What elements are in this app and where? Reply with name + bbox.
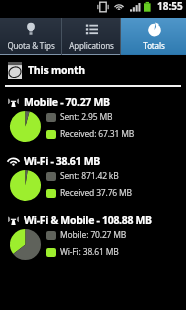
button[interactable]: Quota & Tips [0, 18, 62, 55]
staticText: Quota & Tips [7, 40, 55, 51]
staticText: Wi-Fi: 38.61 MB [60, 246, 119, 258]
staticText: Received: 67.31 MB [60, 128, 135, 140]
staticText: Totals [143, 40, 165, 51]
button[interactable]: Applications [62, 18, 121, 55]
staticText: Wi-Fi - 38.61 MB [24, 154, 100, 168]
staticText: 18:55 [157, 0, 183, 13]
staticText: Sent: 871.42 kB [60, 170, 119, 182]
staticText: Applications [69, 40, 114, 51]
staticText: Mobile: 70.27 MB [60, 229, 127, 241]
other: Mobile data [8, 97, 19, 107]
other: Mobile data [8, 215, 19, 225]
other: Wi-Fi [8, 156, 19, 166]
button[interactable]: Wi-Fi [0, 146, 186, 205]
button[interactable]: Mobile data [0, 205, 186, 264]
staticText: Wi-Fi & Mobile - 108.88 MB [24, 213, 152, 227]
staticText: Mobile - 70.27 MB [24, 95, 110, 109]
button[interactable]: Mobile data [0, 87, 186, 146]
staticText: Sent: 2.95 MB [60, 111, 113, 123]
staticText: Received 37.76 MB [60, 187, 132, 199]
button[interactable]: Totals [121, 18, 186, 55]
staticText: This month [28, 63, 85, 77]
